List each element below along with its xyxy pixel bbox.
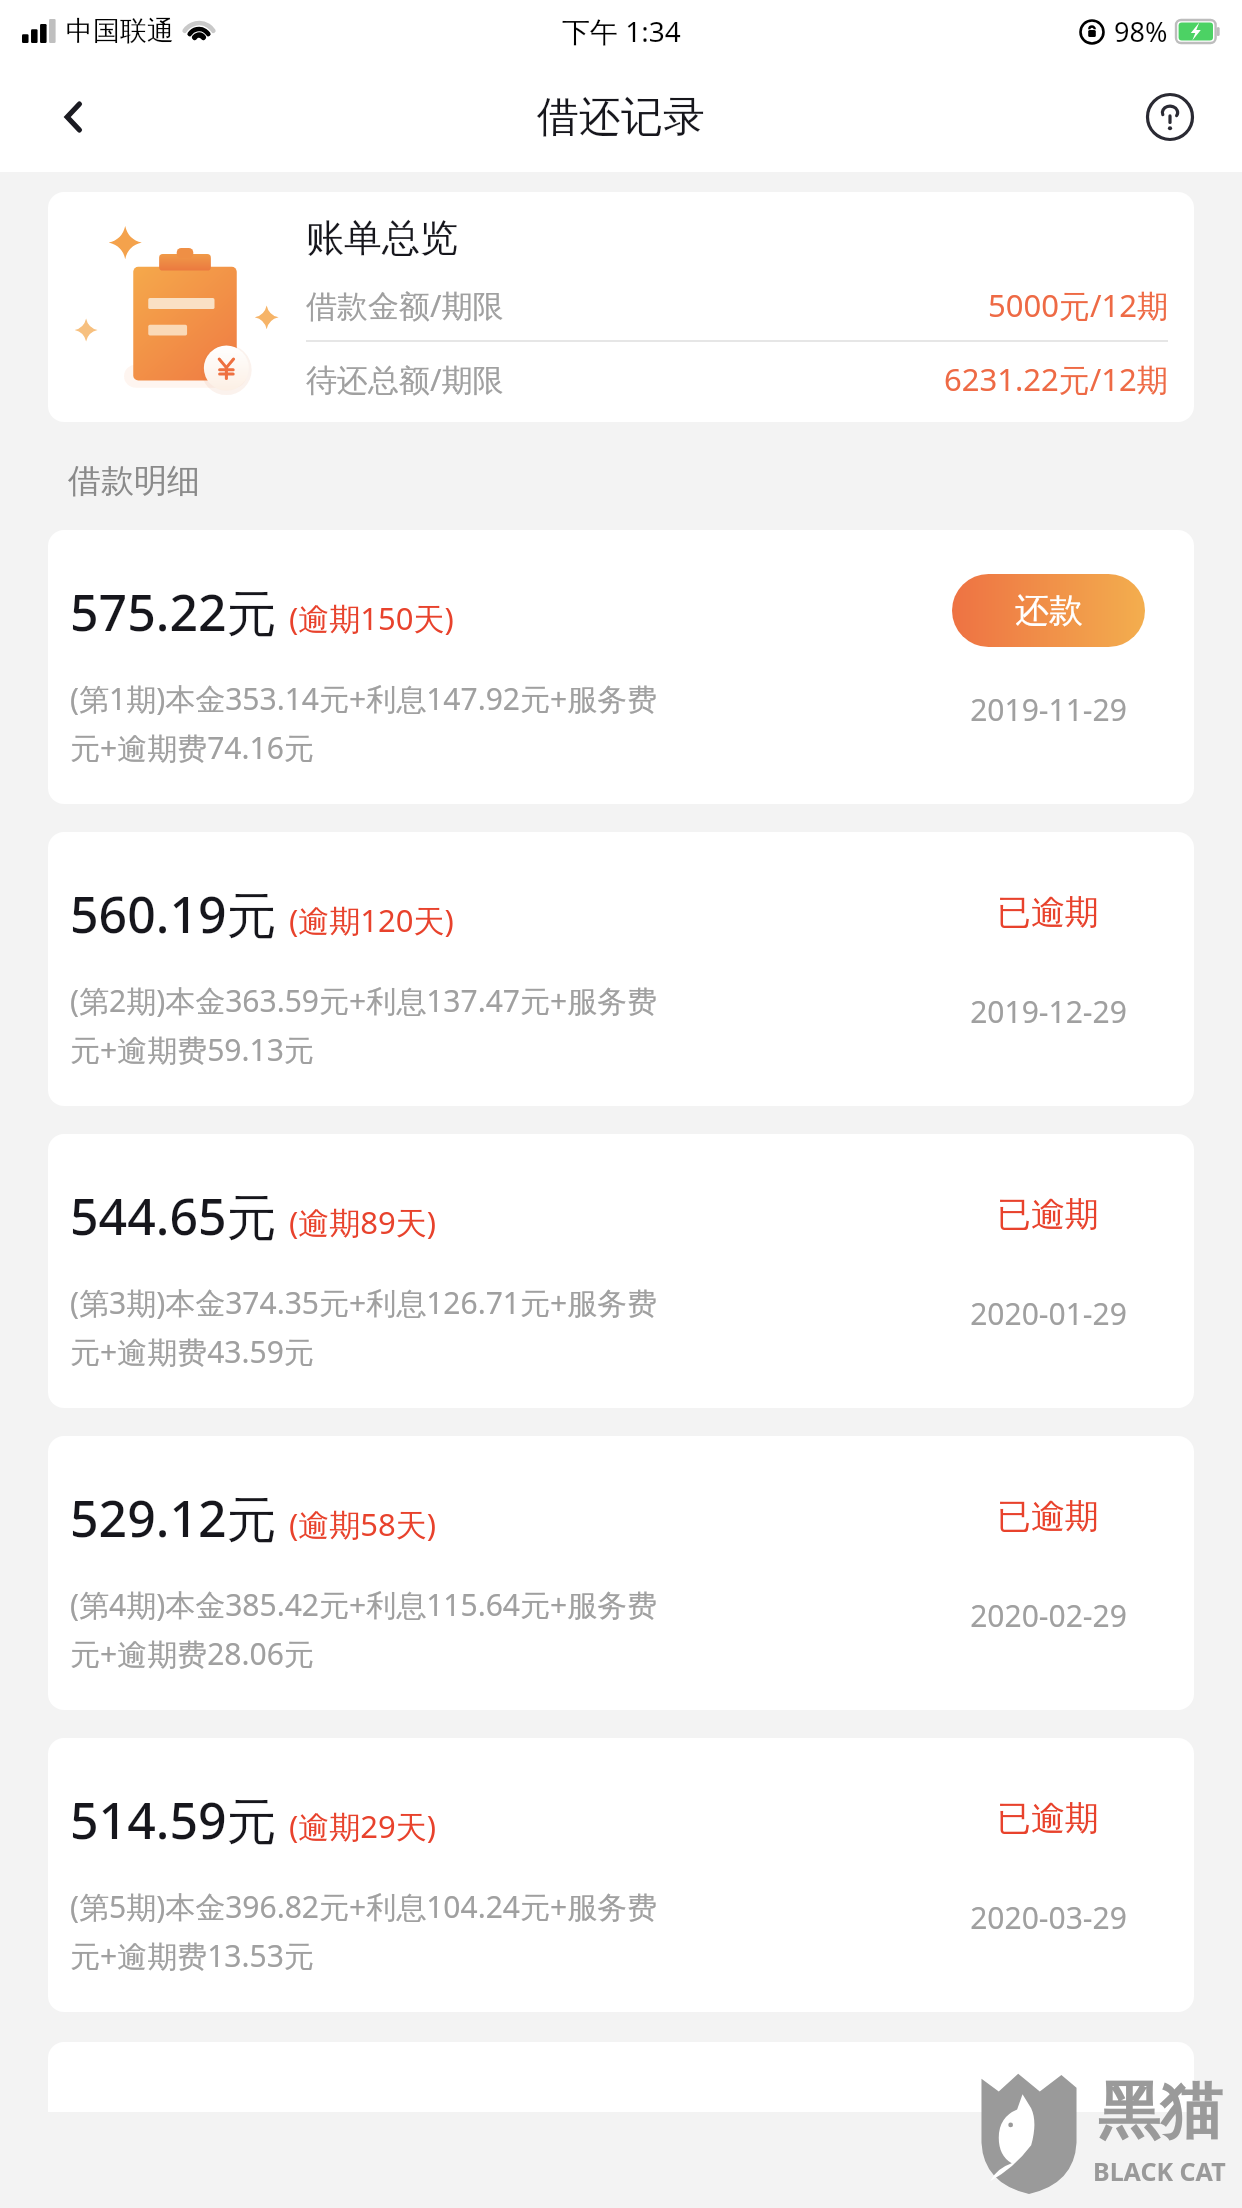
- staticText: (第4期)本金385.42元+利息115.64元+服务费: [70, 1584, 658, 1625]
- staticText: 已逾期: [997, 891, 1099, 934]
- staticText: 还款: [1015, 589, 1083, 632]
- staticText: 6231.22元/12期: [944, 358, 1168, 400]
- staticText: 98%: [1114, 13, 1168, 50]
- staticText: 元+逾期费28.06元: [70, 1633, 314, 1674]
- button[interactable]: 514.59元: [48, 1738, 1194, 2012]
- staticText: 中国联通: [66, 14, 174, 48]
- button[interactable]: Help: [1138, 85, 1202, 149]
- button[interactable]: 账单总览: [48, 192, 1194, 422]
- staticText: (逾期58天): [289, 1503, 437, 1545]
- button[interactable]: 575.22元: [48, 530, 1194, 804]
- button[interactable]: 529.12元: [48, 1436, 1194, 1710]
- button[interactable]: 还款: [952, 574, 1145, 647]
- staticText: 已逾期: [997, 1193, 1099, 1236]
- staticText: 借款明细: [68, 460, 200, 502]
- staticText: 560.19元: [70, 880, 277, 948]
- staticText: 544.65元: [70, 1182, 277, 1250]
- staticText: 账单总览: [306, 214, 458, 262]
- button[interactable]: 560.19元: [48, 832, 1194, 1106]
- staticText: BLACK CAT: [1093, 2154, 1226, 2188]
- staticText: 529.12元: [70, 1484, 277, 1552]
- staticText: (第5期)本金396.82元+利息104.24元+服务费: [70, 1886, 658, 1927]
- staticText: 借还记录: [537, 91, 705, 144]
- staticText: 元+逾期费59.13元: [70, 1029, 314, 1070]
- staticText: (逾期150天): [289, 597, 454, 639]
- staticText: 已逾期: [997, 1495, 1099, 1538]
- staticText: 元+逾期费74.16元: [70, 727, 314, 768]
- staticText: (第2期)本金363.59元+利息137.47元+服务费: [70, 980, 658, 1021]
- staticText: 2019-11-29: [970, 689, 1127, 730]
- staticText: 575.22元: [70, 578, 277, 646]
- staticText: 下午 1:34: [562, 12, 681, 50]
- button[interactable]: Back: [44, 87, 104, 147]
- staticText: 借款金额/期限: [306, 284, 504, 326]
- staticText: 元+逾期费13.53元: [70, 1935, 314, 1976]
- staticText: (逾期29天): [289, 1805, 437, 1847]
- staticText: 元+逾期费43.59元: [70, 1331, 314, 1372]
- button[interactable]: [48, 2042, 1194, 2112]
- staticText: 2020-01-29: [970, 1293, 1127, 1334]
- staticText: (逾期89天): [289, 1201, 437, 1243]
- staticText: 5000元/12期: [988, 284, 1168, 326]
- staticText: 2019-12-29: [970, 991, 1127, 1032]
- staticText: 2020-03-29: [970, 1897, 1127, 1938]
- staticText: 514.59元: [70, 1786, 277, 1854]
- staticText: (第3期)本金374.35元+利息126.71元+服务费: [70, 1282, 658, 1323]
- staticText: 黑猫: [1098, 2072, 1222, 2150]
- staticText: (逾期120天): [289, 899, 454, 941]
- staticText: (第1期)本金353.14元+利息147.92元+服务费: [70, 678, 658, 719]
- staticText: 待还总额/期限: [306, 358, 504, 400]
- staticText: 2020-02-29: [970, 1595, 1127, 1636]
- button[interactable]: 544.65元: [48, 1134, 1194, 1408]
- staticText: 已逾期: [997, 1797, 1099, 1840]
